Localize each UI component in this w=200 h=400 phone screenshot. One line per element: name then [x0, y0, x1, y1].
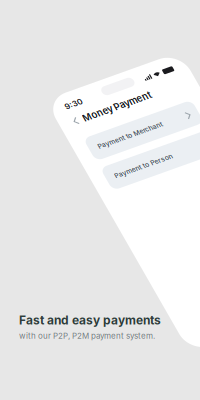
- staticText: Payment to Merchant: [68, 159, 136, 167]
- staticText: Payment to Person: [68, 193, 129, 201]
- staticText: with our P2P, P2M payment system.: [19, 331, 155, 341]
- button[interactable]: Back: [59, 126, 64, 135]
- staticText: Fast and easy payments: [19, 313, 161, 327]
- button[interactable]: Payment to Merchant: [59, 150, 174, 176]
- button[interactable]: Payment to Person: [59, 184, 174, 210]
- staticText: Money Payment: [69, 125, 141, 136]
- staticText: 9:30: [59, 109, 77, 118]
